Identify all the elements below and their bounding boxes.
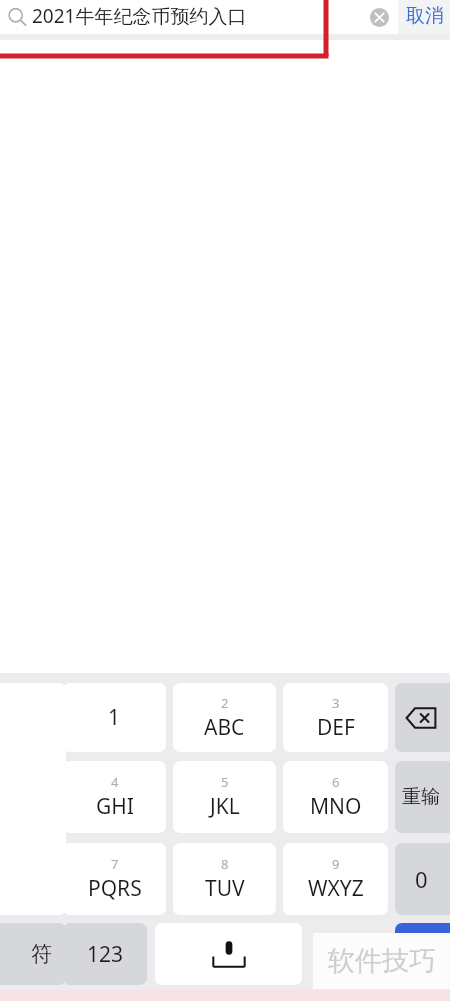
button[interactable]: 8 bbox=[173, 843, 276, 915]
staticText: 软件技巧 bbox=[328, 944, 436, 978]
button[interactable]: 123 bbox=[63, 923, 147, 985]
button[interactable]: 0 bbox=[395, 843, 450, 915]
staticText: DEF bbox=[317, 713, 355, 742]
staticText: 123 bbox=[87, 940, 124, 969]
staticText: 0 bbox=[415, 864, 428, 894]
staticText: JKL bbox=[210, 792, 240, 821]
staticText: 取消 bbox=[406, 4, 444, 28]
staticText: GHI bbox=[96, 792, 134, 821]
button[interactable]: Search bbox=[395, 923, 450, 985]
button[interactable]: 取消 bbox=[398, 0, 450, 34]
button[interactable]: Backspace bbox=[395, 683, 450, 752]
button[interactable]: 重输 bbox=[395, 761, 450, 833]
button[interactable]: Clear bbox=[370, 8, 389, 27]
button[interactable]: 2 bbox=[173, 683, 276, 752]
staticText: 4 bbox=[111, 773, 119, 791]
button[interactable]: 9 bbox=[283, 843, 388, 915]
staticText: 9 bbox=[332, 855, 340, 873]
staticText: 8 bbox=[221, 855, 229, 873]
staticText: ABC bbox=[204, 713, 245, 742]
staticText: 5 bbox=[221, 773, 229, 791]
staticText: 3 bbox=[332, 694, 340, 712]
button[interactable]: Search bbox=[6, 6, 28, 28]
staticText: 重输 bbox=[402, 785, 440, 809]
staticText: TUV bbox=[205, 874, 245, 903]
staticText: 6 bbox=[332, 773, 340, 791]
button[interactable]: 3 bbox=[283, 683, 388, 752]
staticText: PQRS bbox=[88, 874, 142, 903]
staticText: MNO bbox=[310, 792, 362, 821]
button[interactable]: 1 bbox=[63, 683, 166, 752]
button[interactable]: 7 bbox=[63, 843, 166, 915]
staticText: 7 bbox=[111, 855, 119, 873]
staticText: WXYZ bbox=[308, 874, 364, 903]
staticText: 2021牛年纪念币预约入口 bbox=[32, 3, 247, 29]
button[interactable]: 6 bbox=[283, 761, 388, 833]
button[interactable]: 4 bbox=[63, 761, 166, 833]
button[interactable]: 5 bbox=[173, 761, 276, 833]
staticText: 2 bbox=[221, 694, 229, 712]
staticText: 符 bbox=[31, 941, 52, 967]
button[interactable]: Voice input bbox=[155, 923, 302, 985]
staticText: 1 bbox=[108, 703, 121, 732]
button[interactable]: 符 bbox=[0, 923, 66, 985]
